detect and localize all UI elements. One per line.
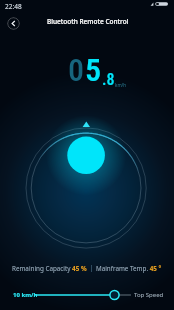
button[interactable]: Power dial xyxy=(0,0,174,310)
staticText: Mainframe Temp. 45 ° xyxy=(96,264,162,273)
button[interactable]: Top speed slider xyxy=(0,286,174,310)
staticText: Remaining Capacity 45 % xyxy=(12,264,87,273)
staticText: 22:48 xyxy=(5,2,22,11)
staticText: 10 km/h xyxy=(13,291,38,299)
button[interactable]: Back xyxy=(7,17,20,30)
staticText: km/h xyxy=(115,82,127,88)
staticText: .8 xyxy=(102,70,115,89)
staticText: 0 xyxy=(68,51,85,89)
staticText: Top Speed xyxy=(134,291,164,299)
staticText: Bluetooth Remote Control xyxy=(47,17,129,26)
staticText: 5 xyxy=(85,51,102,89)
